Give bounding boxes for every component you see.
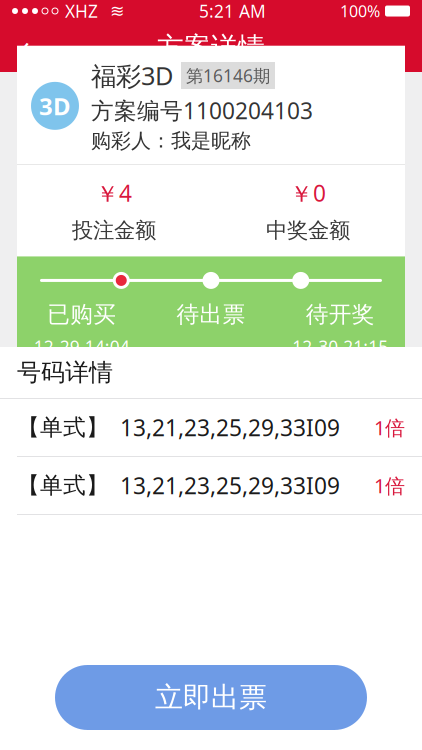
staticText: 投注金额 bbox=[72, 217, 156, 243]
staticText: ‹ bbox=[17, 15, 30, 79]
staticText: 【单式】 bbox=[17, 472, 109, 499]
staticText: 100% bbox=[340, 0, 380, 22]
staticText: ￥0 bbox=[290, 178, 326, 208]
staticText: 待出票 bbox=[176, 300, 245, 328]
staticText: 购彩人：我是昵称 bbox=[91, 128, 251, 153]
staticText: 待开奖 bbox=[306, 300, 375, 328]
staticText: 已购买 bbox=[47, 300, 116, 328]
staticText: 1倍 bbox=[374, 472, 405, 499]
staticText: ￥4 bbox=[96, 178, 132, 208]
staticText: XHZ bbox=[65, 0, 98, 22]
staticText: 立即出票 bbox=[155, 680, 267, 715]
staticText: 【单式】 bbox=[17, 414, 109, 441]
button[interactable]: Back bbox=[0, 23, 48, 71]
staticText: 方案详情 bbox=[157, 31, 265, 63]
staticText bbox=[208, 335, 213, 358]
staticText: 13,21,23,25,29,33I09 bbox=[120, 412, 340, 442]
staticText: 号码详情 bbox=[17, 358, 113, 387]
staticText: 1倍 bbox=[374, 414, 405, 441]
staticText: 12-29 14:04 bbox=[34, 335, 130, 358]
staticText: 12-30 21:15 bbox=[292, 335, 388, 358]
staticText: 方案编号1100204103 bbox=[91, 95, 313, 125]
staticText: 福彩3D bbox=[91, 59, 173, 92]
staticText: 第16146期 bbox=[186, 64, 270, 87]
staticText: 13,21,23,25,29,33I09 bbox=[120, 470, 340, 500]
staticText: ≋ bbox=[110, 1, 125, 21]
staticText: 中奖金额 bbox=[266, 217, 350, 243]
staticText: 3D bbox=[39, 90, 71, 122]
button[interactable]: 立即出票 bbox=[55, 665, 367, 730]
staticText: 5:21 AM bbox=[199, 0, 266, 22]
